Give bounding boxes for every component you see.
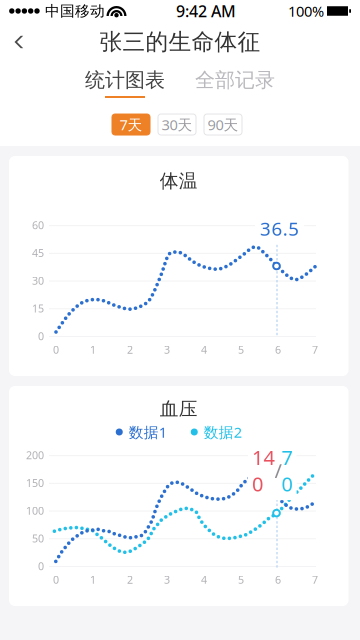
staticText: 140 bbox=[252, 444, 275, 497]
staticText: 统计图表 bbox=[85, 68, 165, 92]
button[interactable]: 7天 bbox=[112, 114, 150, 135]
staticText: 血压 bbox=[160, 397, 198, 420]
staticText: 0 bbox=[53, 342, 59, 357]
staticText: 6 bbox=[275, 342, 281, 357]
staticText: 70 bbox=[282, 444, 293, 497]
staticText: 7 bbox=[312, 342, 318, 357]
staticText: 200 bbox=[26, 448, 44, 462]
staticText: 5 bbox=[238, 342, 244, 357]
button[interactable]: 90天 bbox=[204, 114, 242, 135]
staticText: 2 bbox=[127, 572, 133, 587]
staticText: 0 bbox=[38, 329, 44, 343]
staticText: 7 bbox=[312, 572, 318, 587]
staticText: 数据1 bbox=[129, 422, 167, 442]
staticText: 1 bbox=[90, 342, 96, 357]
staticText: 9:42 AM bbox=[176, 0, 236, 22]
staticText: 100 bbox=[26, 503, 44, 518]
staticText: 0 bbox=[38, 559, 44, 573]
staticText: 3 bbox=[164, 342, 170, 357]
staticText: 2 bbox=[127, 342, 133, 357]
staticText: 张三的生命体征 bbox=[99, 28, 260, 56]
staticText: 30 bbox=[32, 273, 44, 288]
staticText: 4 bbox=[201, 342, 207, 357]
staticText: / bbox=[275, 457, 282, 484]
staticText: 3 bbox=[164, 572, 170, 587]
staticText: 90天 bbox=[207, 115, 238, 134]
staticText: 15 bbox=[32, 301, 44, 315]
staticText: 150 bbox=[26, 476, 44, 490]
staticText: 45 bbox=[32, 246, 44, 260]
staticText: 0 bbox=[53, 572, 59, 587]
staticText: 全部记录 bbox=[195, 68, 275, 92]
staticText: 100% bbox=[288, 1, 324, 21]
staticText: 中国移动 bbox=[45, 2, 105, 20]
staticText: 5 bbox=[238, 572, 244, 587]
staticText: 数据2 bbox=[204, 422, 242, 442]
staticText: 7天 bbox=[119, 115, 142, 134]
staticText: 6 bbox=[275, 572, 281, 587]
staticText: 30天 bbox=[161, 115, 192, 134]
staticText: 1 bbox=[90, 572, 96, 587]
button[interactable]: 30天 bbox=[158, 114, 196, 135]
staticText: 36.5 bbox=[260, 216, 299, 241]
staticText: 体温 bbox=[160, 169, 198, 192]
button[interactable]: 全部记录 bbox=[180, 62, 290, 103]
button[interactable]: 统计图表 bbox=[70, 62, 180, 103]
staticText: 4 bbox=[201, 572, 207, 587]
staticText: 50 bbox=[32, 531, 44, 545]
staticText: 60 bbox=[32, 218, 44, 232]
button[interactable]: Back bbox=[0, 24, 40, 60]
